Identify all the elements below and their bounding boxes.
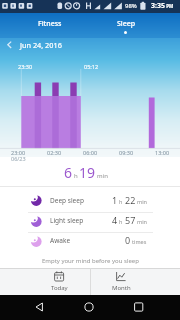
staticText: times bbox=[132, 238, 147, 245]
staticText: 23:30 bbox=[18, 63, 33, 70]
staticText: 02:30 bbox=[47, 149, 62, 156]
button[interactable] bbox=[124, 295, 154, 320]
staticText: min bbox=[137, 218, 147, 225]
button[interactable]: 6 bbox=[64, 163, 108, 182]
staticText: h bbox=[74, 172, 78, 180]
staticText: 1 bbox=[112, 194, 118, 206]
staticText: 6 bbox=[64, 163, 73, 182]
button[interactable] bbox=[90, 269, 180, 296]
staticText: 3:35 bbox=[151, 1, 165, 11]
staticText: 22 bbox=[125, 194, 136, 206]
staticText: 06:00 bbox=[83, 149, 98, 156]
button[interactable] bbox=[0, 232, 180, 252]
button[interactable] bbox=[4, 38, 80, 51]
staticText: Sleep bbox=[117, 19, 136, 29]
button[interactable]: Sleep bbox=[106, 18, 146, 30]
staticText: 4 bbox=[112, 214, 118, 226]
staticText: Deep sleep bbox=[50, 196, 84, 205]
staticText: 13:00 bbox=[155, 149, 170, 156]
staticText: min bbox=[97, 172, 108, 180]
staticText: h bbox=[119, 198, 123, 205]
staticText: 06/23 bbox=[11, 155, 26, 162]
staticText: Light sleep bbox=[50, 216, 84, 225]
button[interactable] bbox=[24, 295, 54, 320]
staticText: 0 bbox=[125, 234, 131, 246]
button[interactable] bbox=[0, 212, 180, 232]
staticText: 19 bbox=[79, 163, 96, 182]
staticText: Fitness bbox=[38, 19, 62, 29]
button[interactable]: Fitness bbox=[30, 18, 70, 30]
staticText: Jun 24, 2016 bbox=[20, 40, 62, 50]
button[interactable] bbox=[74, 295, 104, 320]
staticText: min bbox=[137, 198, 147, 205]
staticText: Empty your mind before you sleep bbox=[42, 257, 139, 265]
staticText: 98% bbox=[125, 2, 137, 10]
button[interactable] bbox=[0, 187, 180, 212]
button[interactable] bbox=[0, 269, 90, 296]
staticText: Month bbox=[112, 284, 131, 292]
staticText: 23:00 bbox=[11, 149, 26, 156]
staticText: Today bbox=[51, 284, 68, 292]
staticText: 09:30 bbox=[119, 149, 134, 156]
staticText: Awake bbox=[50, 236, 71, 245]
staticText: PM bbox=[165, 3, 174, 9]
staticText: h bbox=[119, 218, 123, 225]
staticText: 05:12 bbox=[84, 63, 99, 70]
staticText: 57 bbox=[125, 214, 136, 226]
